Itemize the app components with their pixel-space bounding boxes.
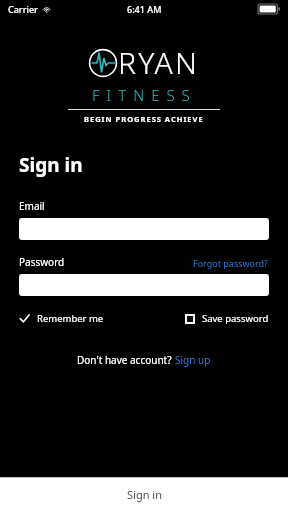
button[interactable]: Text field: [19, 274, 269, 296]
staticText: Email: [19, 199, 45, 213]
staticText: Carrier: [8, 3, 38, 15]
button[interactable]: Save password: [185, 310, 269, 327]
staticText: 6:41 AM: [127, 3, 162, 15]
staticText: RYAN: [118, 42, 200, 83]
button[interactable]: Remember me: [19, 310, 104, 327]
button[interactable]: Sign in: [0, 477, 288, 512]
staticText: Sign in: [127, 487, 162, 502]
staticText: BEGIN PROGRESS ACHIEVE: [84, 114, 204, 124]
staticText: Forgot password?: [193, 257, 269, 269]
staticText: Password: [19, 255, 65, 269]
staticText: Save password: [202, 312, 269, 325]
staticText: FITNESS: [92, 85, 197, 105]
staticText: Don't have account?: [77, 353, 175, 367]
button[interactable]: Forgot password?: [193, 257, 269, 269]
staticText: Sign up: [175, 353, 211, 367]
button[interactable]: Sign up: [175, 353, 211, 367]
staticText: Remember me: [37, 312, 104, 325]
staticText: Sign in: [19, 152, 83, 178]
button[interactable]: Text field: [19, 218, 269, 240]
